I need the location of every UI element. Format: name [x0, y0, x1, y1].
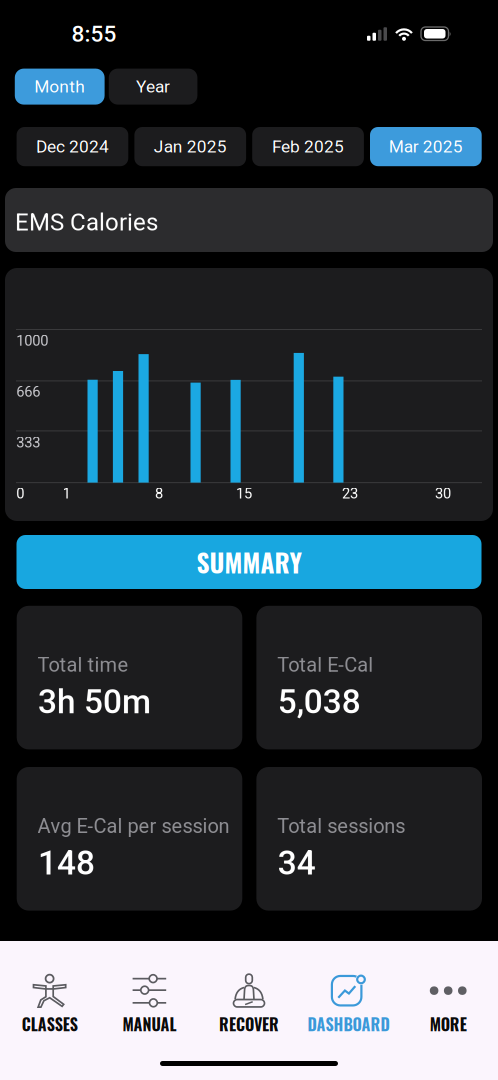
- staticText: Total E-Cal: [277, 653, 373, 677]
- button[interactable]: Year: [109, 69, 197, 105]
- staticText: 8: [155, 485, 163, 502]
- staticText: 15: [236, 485, 252, 502]
- staticText: 8:55: [71, 21, 116, 47]
- button[interactable]: RECOVER: [199, 975, 299, 1033]
- staticText: Mar 2025: [389, 136, 463, 157]
- button[interactable]: CLASSES: [0, 975, 100, 1033]
- staticText: Total sessions: [277, 814, 405, 838]
- staticText: Dec 2024: [36, 136, 109, 157]
- staticText: Feb 2025: [272, 136, 344, 157]
- staticText: 3h 50m: [38, 682, 151, 721]
- staticText: Year: [136, 76, 170, 97]
- button[interactable]: Month: [15, 69, 105, 105]
- button[interactable]: Mar 2025: [370, 127, 482, 166]
- button[interactable]: SUMMARY: [16, 535, 481, 589]
- staticText: 666: [16, 383, 40, 400]
- staticText: Month: [34, 76, 85, 97]
- button[interactable]: Jan 2025: [134, 127, 246, 166]
- staticText: DASHBOARD: [308, 1012, 390, 1036]
- staticText: 34: [278, 843, 316, 883]
- button[interactable]: Dec 2024: [17, 127, 128, 166]
- staticText: 23: [342, 485, 358, 502]
- staticText: 148: [38, 843, 95, 883]
- staticText: Avg E-Cal per session: [37, 814, 229, 838]
- staticText: 333: [16, 434, 40, 451]
- staticText: Jan 2025: [154, 136, 227, 157]
- staticText: EMS Calories: [15, 208, 158, 236]
- staticText: 0: [16, 485, 24, 502]
- staticText: 30: [435, 485, 451, 502]
- button[interactable]: MANUAL: [100, 975, 199, 1033]
- staticText: 1000: [16, 332, 48, 349]
- button[interactable]: MORE: [398, 975, 498, 1033]
- button[interactable]: DASHBOARD: [299, 975, 398, 1033]
- staticText: Total time: [37, 653, 128, 677]
- staticText: MANUAL: [122, 1012, 176, 1036]
- staticText: SUMMARY: [196, 543, 301, 581]
- staticText: MORE: [430, 1012, 467, 1036]
- button[interactable]: Feb 2025: [252, 127, 364, 166]
- staticText: RECOVER: [219, 1012, 279, 1036]
- staticText: 1: [62, 485, 70, 502]
- staticText: CLASSES: [22, 1012, 78, 1036]
- staticText: 5,038: [278, 682, 361, 721]
